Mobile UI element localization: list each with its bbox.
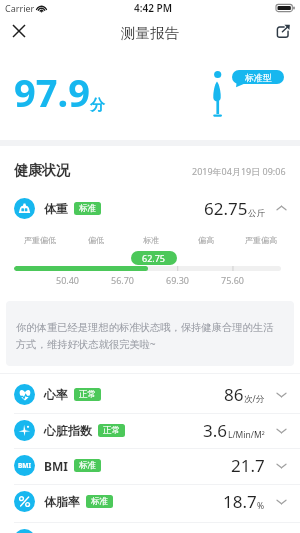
staticText: 56.70	[111, 274, 135, 286]
staticText: 正常	[103, 425, 120, 436]
staticText: Carrier	[5, 2, 35, 14]
staticText: L/Min/M²	[228, 429, 265, 441]
staticText: 18.7	[223, 490, 257, 513]
button[interactable]: 体重	[0, 195, 300, 221]
staticText: 心率	[44, 387, 68, 402]
staticText: 次/分	[244, 393, 265, 405]
staticText: 严重偏高	[245, 235, 277, 245]
staticText: BMI	[44, 458, 68, 474]
staticText: 86	[224, 383, 244, 406]
staticText: 测量报告	[121, 24, 179, 42]
staticText: 标准型	[245, 72, 272, 83]
button[interactable]: Close	[6, 18, 32, 44]
staticText: 21.7	[231, 454, 265, 477]
staticText: 50.40	[56, 274, 80, 286]
staticText: 2019年04月19日 09:06	[192, 165, 286, 177]
staticText: 标准	[143, 235, 159, 245]
staticText: 你的体重已经是理想的标准状态哦，保持健康合理的生活方式，维持好状态就很完美啦~	[16, 321, 276, 351]
staticText: 健康状况	[14, 162, 70, 180]
staticText: 标准	[91, 496, 108, 507]
staticText: 3.6	[203, 419, 228, 442]
staticText: 公斤	[248, 208, 265, 219]
staticText: 69.30	[166, 274, 190, 286]
staticText: 偏低	[88, 235, 104, 245]
staticText: 标准	[79, 460, 96, 471]
staticText: 心脏指数	[44, 423, 92, 438]
staticText: 分	[90, 96, 105, 115]
button[interactable]: Share	[270, 18, 296, 44]
staticText: 97.9	[14, 66, 90, 118]
staticText: 62.75	[204, 197, 248, 220]
staticText: 正常	[79, 389, 96, 400]
staticText: BMI	[18, 461, 31, 470]
staticText: 62.75	[142, 252, 166, 264]
button[interactable]: 基础代谢	[0, 526, 300, 533]
button[interactable]: 心脏指数	[0, 417, 300, 444]
staticText: 体重	[44, 201, 68, 216]
staticText: 标准	[79, 203, 96, 214]
staticText: 75.60	[221, 274, 245, 286]
staticText: 4:42 PM	[134, 1, 172, 15]
button[interactable]: 体脂率	[0, 488, 300, 515]
button[interactable]: BMI	[0, 452, 300, 479]
button[interactable]: 心率	[0, 381, 300, 408]
staticText: %	[257, 500, 265, 512]
staticText: 偏高	[198, 235, 214, 245]
staticText: 严重偏低	[24, 235, 56, 245]
staticText: 体脂率	[44, 494, 80, 509]
